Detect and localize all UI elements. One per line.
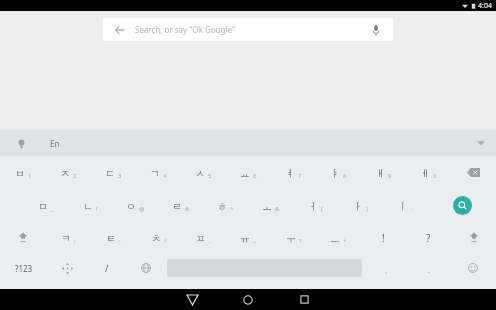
button[interactable]: ㅓ [293,189,338,222]
button[interactable]: ㅊ [136,222,181,253]
staticText: 9 [388,172,392,180]
staticText: ( [321,205,323,213]
button[interactable]: Search [428,189,496,222]
staticText: ㅋ [61,232,71,245]
staticText: ) [366,205,368,213]
staticText: : [119,237,121,245]
button[interactable]: Voice search [369,23,383,37]
button[interactable]: ㅂ [0,156,46,189]
staticText: 7 [298,172,302,180]
staticText: / [164,237,167,245]
button[interactable]: ? [406,222,451,253]
staticText: ㅕ [285,167,295,180]
button[interactable]: Back [103,18,393,41]
staticText: ? [299,237,302,245]
button[interactable]: ㅣ [383,189,428,222]
button[interactable]: ㅏ [338,189,383,222]
button[interactable]: Back [113,23,127,37]
staticText: ? [426,231,431,245]
staticText: ㅛ [240,167,250,180]
staticText: ,, [253,237,257,245]
button[interactable]: En [36,130,472,156]
button[interactable]: ㅗ [248,189,293,222]
staticText: 5 [208,172,212,180]
button[interactable]: ! [361,222,406,253]
button[interactable]: ㅋ [46,222,91,253]
staticText: 0 [433,172,437,180]
button[interactable]: Move cursor [48,253,87,283]
button[interactable]: / [87,253,126,283]
button[interactable]: ㅛ [226,156,271,189]
staticText: ! [96,205,98,213]
button[interactable]: ㅠ [226,222,271,253]
button[interactable]: Back [164,289,220,310]
button[interactable]: ㄱ [136,156,181,189]
button[interactable]: Shift [0,222,46,253]
staticText: 4 [163,172,167,180]
button[interactable]: Expand suggestions [472,134,490,152]
button[interactable]: ㄹ [158,189,203,222]
button[interactable]: ㄷ [91,156,136,189]
button[interactable]: Home [220,289,276,310]
staticText: ! [382,231,385,245]
staticText: ㅑ [330,167,340,180]
staticText: . [209,237,211,245]
button[interactable]: Suggestions [12,134,30,152]
staticText: ㅂ [15,167,25,180]
button[interactable]: ㅡ [316,222,361,253]
button[interactable]: Change language [126,253,165,283]
staticText: @ [139,205,145,213]
staticText: 2 [73,172,77,180]
staticText: ㅔ [420,167,430,180]
staticText: 8 [343,172,347,180]
staticText: ㅗ [262,200,272,213]
button[interactable]: Space [165,253,364,283]
staticText: ㅅ [195,167,205,180]
button[interactable]: ㅁ [23,189,68,222]
staticText: . [428,266,430,276]
staticText: ㅜ [286,232,296,245]
staticText: 1 [28,172,32,180]
button[interactable]: ㅈ [46,156,91,189]
button[interactable]: ㅑ [316,156,361,189]
staticText: 3 [118,172,122,180]
staticText: ㅡ [330,232,340,245]
button[interactable]: ㅎ [203,189,248,222]
staticText: ㅣ [398,200,408,213]
button[interactable]: ㅌ [91,222,136,253]
staticText: ㅏ [353,200,363,213]
staticText: ㅊ [151,232,161,245]
button[interactable]: ㅅ [181,156,226,189]
button[interactable]: Shift [451,222,496,253]
button[interactable]: ㅔ [406,156,451,189]
staticText: ㅠ [240,232,250,245]
button[interactable]: ㅇ [113,189,158,222]
button[interactable]: Backspace [451,156,496,189]
button[interactable]: ㅐ [361,156,406,189]
staticText: ㅍ [196,232,206,245]
staticText: ㅐ [375,167,385,180]
staticText: ?123 [15,263,33,274]
staticText: & [275,205,280,213]
staticText: 6 [253,172,257,180]
button[interactable]: ㅍ [181,222,226,253]
button[interactable]: Emoji [450,253,496,283]
button[interactable]: ㄴ [68,189,113,222]
staticText: 4:04 [478,1,492,11]
staticText: ㄹ [172,200,182,213]
staticText: ㅈ [60,167,70,180]
button[interactable]: ㅕ [271,156,316,189]
staticText: ㅎ [217,200,227,213]
staticText: ㅇ [126,200,136,213]
staticText: ㄷ [105,167,115,180]
staticText: # [185,205,189,213]
staticText: · [411,205,413,213]
staticText: / [105,262,109,274]
button[interactable]: Recent apps [276,289,332,310]
button[interactable]: ㅜ [271,222,316,253]
staticText: _ [51,205,54,213]
button[interactable]: ?123 [0,253,48,283]
staticText: ^ [230,205,234,213]
